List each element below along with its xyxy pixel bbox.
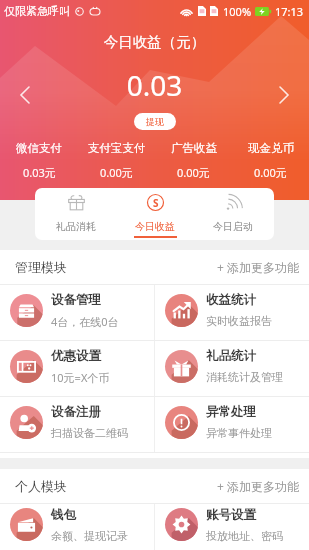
staticText: 优惠设置	[51, 348, 101, 364]
button[interactable]: Previous day	[13, 83, 37, 107]
staticText: 设备注册	[51, 404, 101, 420]
button[interactable]: 设备管理	[0, 285, 154, 340]
staticText: 扫描设备二维码	[51, 426, 128, 440]
button[interactable]: 钱包	[0, 504, 154, 550]
button[interactable]: 异常处理	[155, 397, 309, 452]
staticText: 消耗统计及管理	[206, 370, 283, 384]
staticText: 提现	[146, 116, 164, 127]
staticText: 仅限紧急呼叫	[4, 4, 70, 18]
button[interactable]: 设备注册	[0, 397, 154, 452]
button[interactable]: 账号设置	[155, 504, 309, 550]
staticText: 管理模块	[15, 259, 67, 275]
staticText: 个人模块	[15, 478, 67, 494]
button[interactable]: 礼品统计	[155, 341, 309, 396]
staticText: 4台，在线0台	[51, 314, 119, 329]
staticText: 实时收益报告	[206, 314, 272, 328]
button[interactable]: 提现	[134, 113, 176, 130]
button[interactable]: + 添加更多功能	[217, 255, 299, 279]
button[interactable]: S	[118, 188, 192, 240]
staticText: 今日收益	[135, 220, 175, 233]
staticText: 0.00元	[254, 165, 287, 180]
staticText: 100%	[223, 4, 252, 19]
staticText: 异常事件处理	[206, 426, 272, 440]
staticText: 10元=X个币	[51, 370, 110, 385]
staticText: 异常处理	[206, 404, 256, 420]
staticText: 设备管理	[51, 292, 101, 308]
button[interactable]: 收益统计	[155, 285, 309, 340]
staticText: 余额、提现记录	[51, 529, 128, 543]
button[interactable]: + 添加更多功能	[217, 474, 299, 498]
staticText: 投放地址、密码	[206, 529, 283, 543]
staticText: 账号设置	[206, 507, 256, 523]
button[interactable]: 礼品消耗	[39, 188, 113, 240]
staticText: 0.03元	[23, 165, 56, 180]
staticText: 礼品统计	[206, 348, 256, 364]
staticText: 0.00元	[177, 165, 210, 180]
staticText: 支付宝支付	[88, 141, 146, 155]
staticText: 钱包	[51, 507, 76, 523]
staticText: S	[153, 196, 159, 210]
staticText: 0.00元	[100, 165, 133, 180]
staticText: 今日收益（元）	[0, 33, 309, 51]
staticText: 17:13	[275, 4, 304, 19]
staticText: + 添加更多功能	[217, 259, 299, 275]
button[interactable]: Next day	[272, 83, 296, 107]
staticText: 0.03	[0, 66, 309, 104]
button[interactable]: 优惠设置	[0, 341, 154, 396]
button[interactable]: 今日启动	[196, 188, 270, 240]
staticText: + 添加更多功能	[217, 478, 299, 494]
staticText: 收益统计	[206, 292, 256, 308]
staticText: 现金兑币	[248, 141, 294, 155]
staticText: 微信支付	[16, 141, 62, 155]
staticText: 广告收益	[171, 141, 217, 155]
staticText: 礼品消耗	[56, 220, 96, 233]
staticText: 今日启动	[213, 220, 253, 233]
